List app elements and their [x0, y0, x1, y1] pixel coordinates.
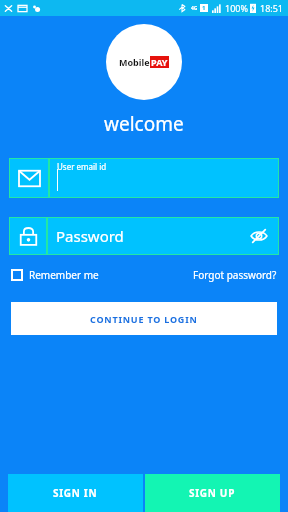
button[interactable]: Forgot password?	[193, 266, 277, 284]
staticText: Remember me	[29, 268, 99, 282]
staticText: welcome	[104, 111, 184, 137]
staticText: Password	[56, 226, 249, 246]
other: Email	[9, 158, 49, 198]
staticText: 18:51	[260, 2, 284, 14]
staticText: 4G	[191, 5, 198, 12]
staticText: User email id	[57, 161, 107, 172]
staticText: SIGN IN	[53, 486, 98, 500]
button[interactable]: Remember me	[11, 266, 99, 284]
button[interactable]: SIGN IN	[8, 474, 143, 512]
button[interactable]: CONTINUE TO LOGIN	[11, 302, 277, 335]
staticText: CONTINUE TO LOGIN	[90, 313, 198, 325]
staticText: 1	[202, 4, 206, 12]
button[interactable]: Email	[9, 158, 279, 198]
staticText: 100%	[225, 2, 248, 14]
button[interactable]: Password	[9, 217, 279, 255]
staticText: SIGN UP	[189, 486, 236, 500]
staticText: Forgot password?	[193, 268, 277, 282]
button[interactable]: SIGN UP	[145, 474, 280, 512]
staticText: Mobile	[119, 56, 150, 68]
staticText: PAY	[151, 56, 168, 68]
other: Password	[9, 217, 47, 255]
button[interactable]: Show password	[249, 226, 269, 246]
